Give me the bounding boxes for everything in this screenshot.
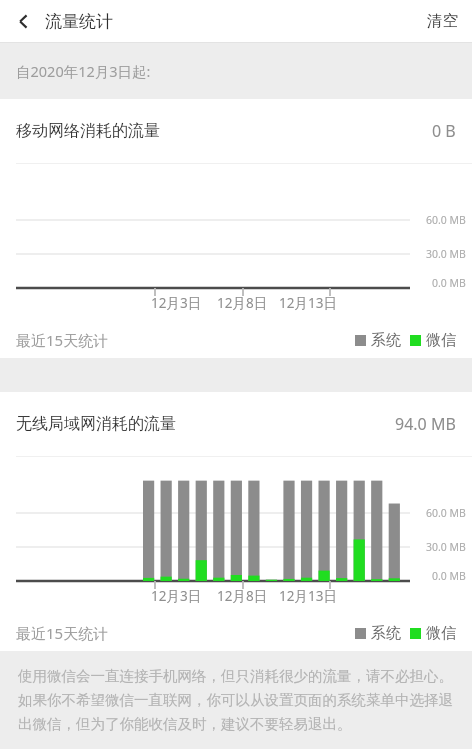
staticText: 系统 xyxy=(371,331,401,350)
staticText: 12月3日 xyxy=(151,294,202,312)
staticText: 系统 xyxy=(371,624,401,643)
button[interactable]: 无线局域网消耗的流量 xyxy=(0,392,472,651)
staticText: 94.0 MB xyxy=(395,413,456,435)
button[interactable]: 清空 xyxy=(413,2,472,40)
staticText: 微信 xyxy=(426,624,456,643)
staticText: 12月3日 xyxy=(151,587,202,605)
staticText: 无线局域网消耗的流量 xyxy=(16,414,176,434)
staticText: 0.0 MB xyxy=(432,569,466,583)
staticText: 12月8日 xyxy=(217,587,268,605)
staticText: 60.0 MB xyxy=(426,213,466,227)
staticText: 自2020年12月3日起: xyxy=(16,61,151,81)
staticText: 12月13日 xyxy=(279,587,337,605)
staticText: 0.0 MB xyxy=(432,276,466,290)
staticText: 流量统计 xyxy=(45,11,113,32)
staticText: 使用微信会一直连接手机网络，但只消耗很少的流量，请不必担心。如果你不希望微信一直… xyxy=(18,667,456,733)
staticText: 30.0 MB xyxy=(426,247,466,261)
staticText: 最近15天统计 xyxy=(16,330,109,350)
staticText: 微信 xyxy=(426,331,456,350)
staticText: 12月8日 xyxy=(217,294,268,312)
staticText: 0 B xyxy=(432,120,456,142)
button[interactable]: Back xyxy=(4,2,42,40)
staticText: 30.0 MB xyxy=(426,540,466,554)
staticText: 移动网络消耗的流量 xyxy=(16,121,160,141)
staticText: 12月13日 xyxy=(279,294,337,312)
staticText: 最近15天统计 xyxy=(16,623,109,643)
staticText: 清空 xyxy=(427,11,458,31)
staticText: 60.0 MB xyxy=(426,506,466,520)
button[interactable]: 移动网络消耗的流量 xyxy=(0,99,472,358)
